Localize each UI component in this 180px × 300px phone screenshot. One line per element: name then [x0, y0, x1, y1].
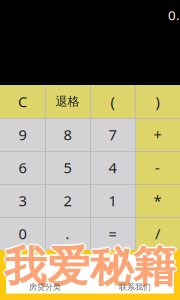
staticText: .	[65, 224, 69, 243]
button[interactable]: *	[135, 184, 180, 217]
button[interactable]: 7	[90, 118, 135, 151]
staticText: 3	[18, 191, 26, 210]
staticText: *	[153, 191, 161, 210]
button[interactable]: =	[90, 217, 135, 250]
staticText: 我爱秘籍	[3, 241, 175, 293]
staticText: 0.	[168, 6, 180, 24]
staticText: 4	[108, 158, 116, 177]
staticText: 退格	[55, 94, 79, 109]
button[interactable]: 9	[0, 118, 45, 151]
staticText: 我爱秘籍	[4, 239, 176, 292]
button[interactable]: )	[135, 85, 180, 118]
staticText: 1	[108, 191, 116, 210]
button[interactable]: .	[45, 217, 90, 250]
staticText: (	[110, 92, 114, 111]
button[interactable]: 联系我们	[90, 280, 180, 294]
staticText: 房贷分类	[29, 282, 61, 292]
staticText: 联系我们	[119, 282, 151, 292]
staticText: -	[155, 158, 160, 177]
button[interactable]: (	[90, 85, 135, 118]
staticText: 0	[18, 224, 26, 243]
staticText: C	[18, 92, 27, 111]
staticText: 我爱秘籍	[4, 242, 176, 295]
button[interactable]: 0	[0, 217, 45, 250]
staticText: 9	[18, 125, 26, 144]
staticText: 7	[108, 125, 116, 144]
staticText: +	[153, 125, 161, 144]
button[interactable]: C	[0, 85, 45, 118]
button[interactable]: 8	[45, 118, 90, 151]
button[interactable]: +	[135, 118, 180, 151]
staticText: 我爱秘籍	[4, 241, 176, 293]
staticText: 2	[63, 191, 71, 210]
button[interactable]: 3	[0, 184, 45, 217]
button[interactable]: 退格	[45, 85, 90, 118]
button[interactable]: 4	[90, 151, 135, 184]
staticText: )	[155, 92, 159, 111]
staticText: 6	[18, 158, 26, 177]
button[interactable]: /	[135, 217, 180, 250]
button[interactable]: 2	[45, 184, 90, 217]
staticText: 8	[63, 125, 71, 144]
staticText: /	[155, 224, 160, 243]
button[interactable]: 1	[90, 184, 135, 217]
button[interactable]: 6	[0, 151, 45, 184]
staticText: 5	[63, 158, 71, 177]
button[interactable]: -	[135, 151, 180, 184]
staticText: 我爱秘籍	[5, 241, 177, 293]
button[interactable]: 5	[45, 151, 90, 184]
staticText: =	[108, 224, 116, 243]
button[interactable]: 房贷分类	[0, 280, 90, 294]
